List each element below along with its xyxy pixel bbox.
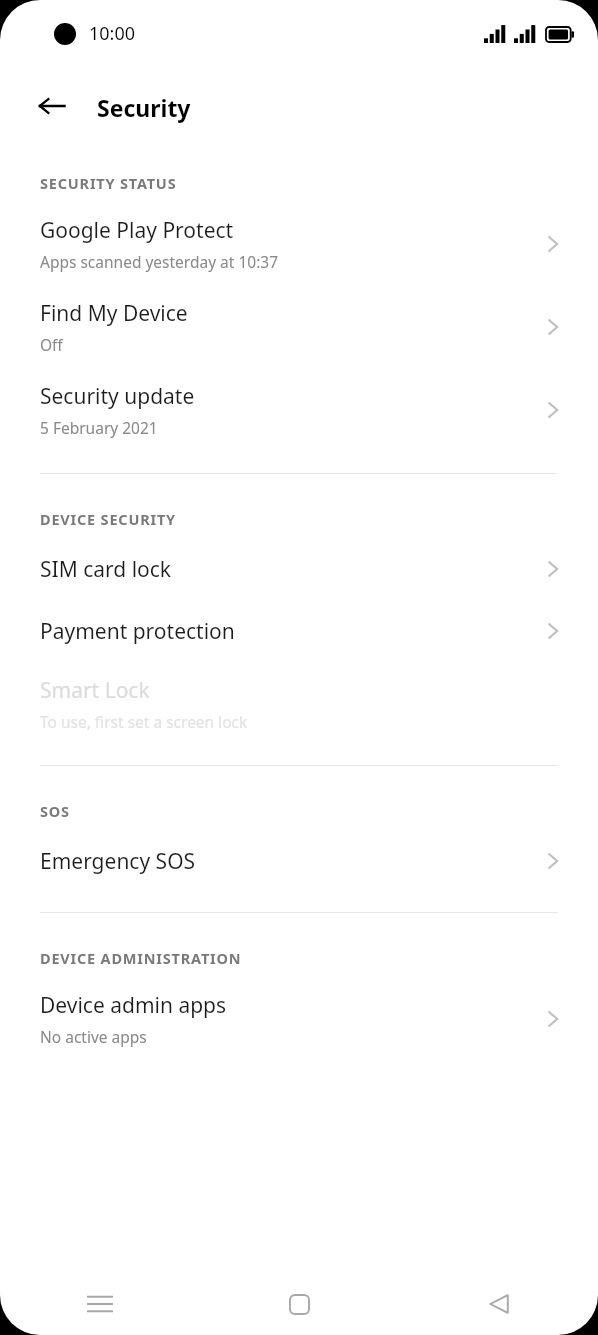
staticText: Payment protection — [40, 617, 235, 646]
staticText: SOS — [40, 801, 70, 821]
staticText: DEVICE ADMINISTRATION — [40, 948, 242, 968]
staticText: SECURITY STATUS — [40, 173, 177, 193]
staticText: SIM card lock — [40, 555, 172, 584]
button[interactable]: Payment protection — [0, 600, 598, 662]
button[interactable]: Back — [399, 1273, 598, 1335]
staticText: To use, first set a screen lock — [40, 711, 248, 732]
staticText: Security — [97, 92, 191, 123]
staticText: Device admin apps — [40, 991, 227, 1020]
button[interactable]: Recent apps — [0, 1273, 200, 1335]
staticText: Emergency SOS — [40, 847, 196, 876]
staticText: Google Play Protect — [40, 216, 234, 245]
staticText: No active apps — [40, 1026, 147, 1047]
button[interactable]: Find My Device — [0, 285, 598, 368]
button[interactable]: Emergency SOS — [0, 830, 598, 892]
staticText: 10:00 — [89, 21, 136, 46]
button[interactable]: Google Play Protect — [0, 202, 598, 285]
staticText: Smart Lock — [40, 676, 150, 705]
staticText: DEVICE SECURITY — [40, 509, 176, 529]
button[interactable]: Device admin apps — [0, 977, 598, 1060]
button[interactable]: Home — [200, 1273, 399, 1335]
button[interactable]: Security update — [0, 368, 598, 451]
staticText: Off — [40, 334, 63, 355]
staticText: 5 February 2021 — [40, 417, 158, 438]
staticText: Apps scanned yesterday at 10:37 — [40, 251, 279, 272]
button[interactable]: Back — [22, 76, 82, 136]
staticText: Security update — [40, 382, 195, 411]
button[interactable]: SIM card lock — [0, 538, 598, 600]
staticText: Find My Device — [40, 299, 188, 328]
